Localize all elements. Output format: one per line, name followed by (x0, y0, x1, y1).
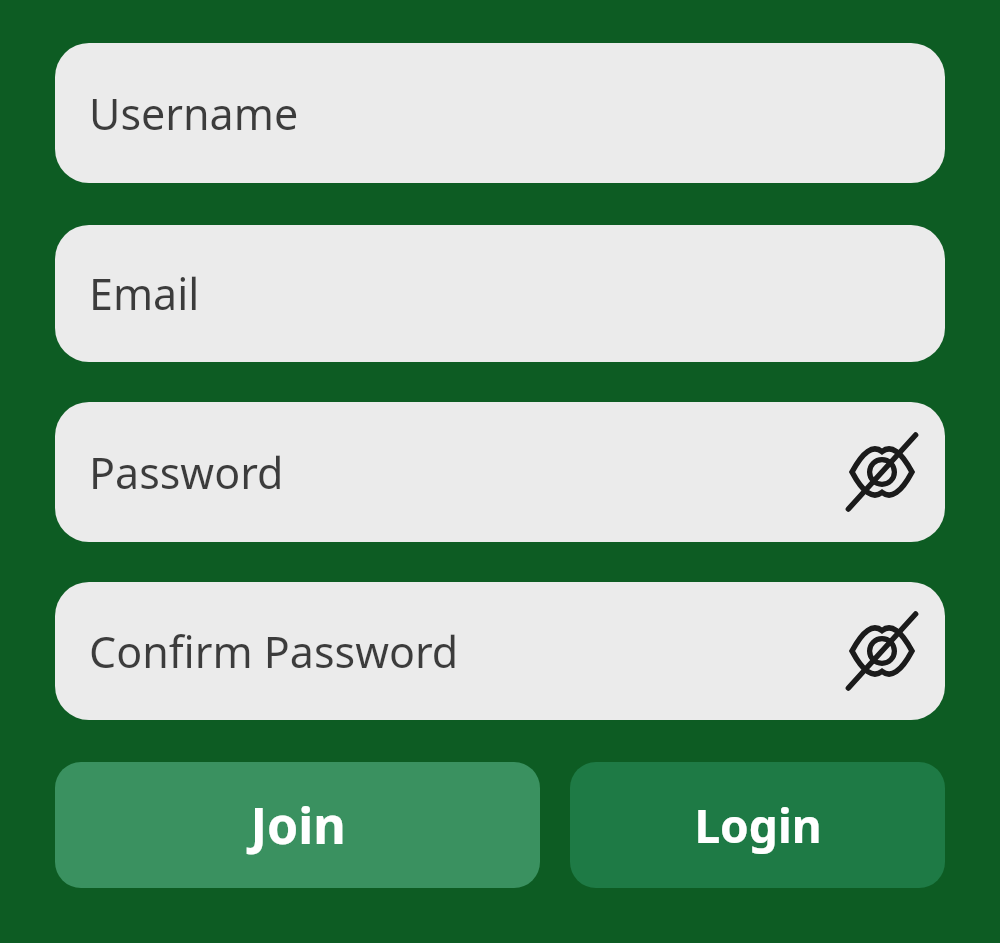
button[interactable]: Login (570, 762, 945, 888)
button[interactable]: Username (55, 43, 945, 183)
button[interactable]: Show password (845, 614, 919, 688)
button[interactable]: Confirm Password (55, 582, 945, 720)
button[interactable]: Password (55, 402, 945, 542)
staticText: Username (89, 84, 299, 143)
staticText: Email (89, 264, 200, 323)
button[interactable]: Show password (845, 435, 919, 509)
button[interactable]: Email (55, 225, 945, 362)
staticText: Join (250, 791, 346, 859)
staticText: Confirm Password (89, 622, 459, 681)
staticText: Password (89, 443, 284, 502)
staticText: Login (694, 794, 822, 857)
button[interactable]: Join (55, 762, 540, 888)
